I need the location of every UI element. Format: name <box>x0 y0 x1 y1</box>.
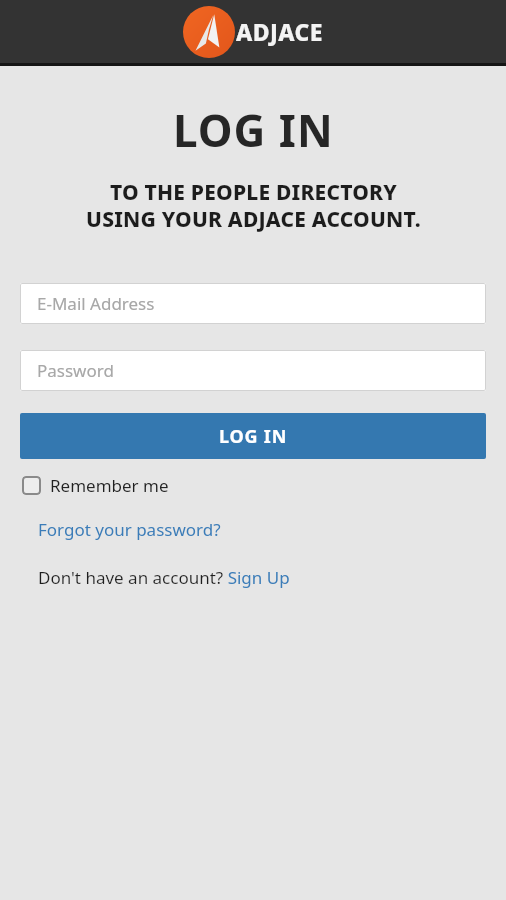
staticText: ADJACE <box>236 16 323 47</box>
other: Adjace logo <box>183 6 323 58</box>
button[interactable]: Forgot your password? <box>38 516 221 543</box>
staticText: LOG IN <box>173 100 334 160</box>
button[interactable]: Password <box>20 350 486 391</box>
button[interactable]: Remember me <box>20 471 171 500</box>
staticText: Don't have an account? Sign Up <box>38 566 290 589</box>
staticText: TO THE PEOPLE DIRECTORY USING YOUR ADJAC… <box>86 178 421 233</box>
button[interactable]: LOG IN <box>20 413 486 459</box>
staticText: Remember me <box>50 474 169 497</box>
staticText: Password <box>37 359 114 382</box>
button[interactable]: Don't have an account? Sign Up <box>38 564 290 591</box>
button[interactable]: E-Mail Address <box>20 283 486 324</box>
staticText: Forgot your password? <box>38 518 221 541</box>
staticText: E-Mail Address <box>37 292 155 315</box>
staticText: LOG IN <box>219 424 288 449</box>
